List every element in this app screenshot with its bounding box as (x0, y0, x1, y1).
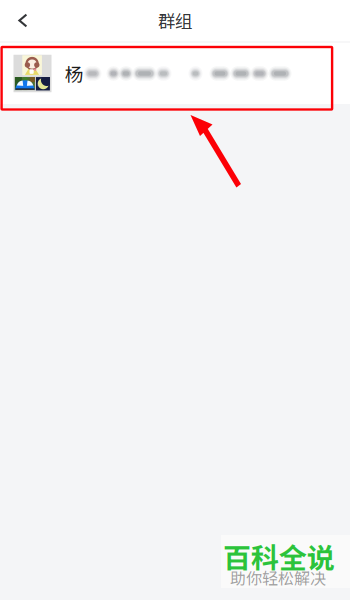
staticText: 杨 (64, 60, 83, 87)
staticText: 群组 (158, 8, 192, 33)
button[interactable]: Back (0, 0, 46, 41)
button[interactable]: 杨 (0, 43, 350, 104)
staticText: 百科全说 (223, 536, 335, 576)
staticText: 助你轻松解决 (230, 566, 326, 589)
